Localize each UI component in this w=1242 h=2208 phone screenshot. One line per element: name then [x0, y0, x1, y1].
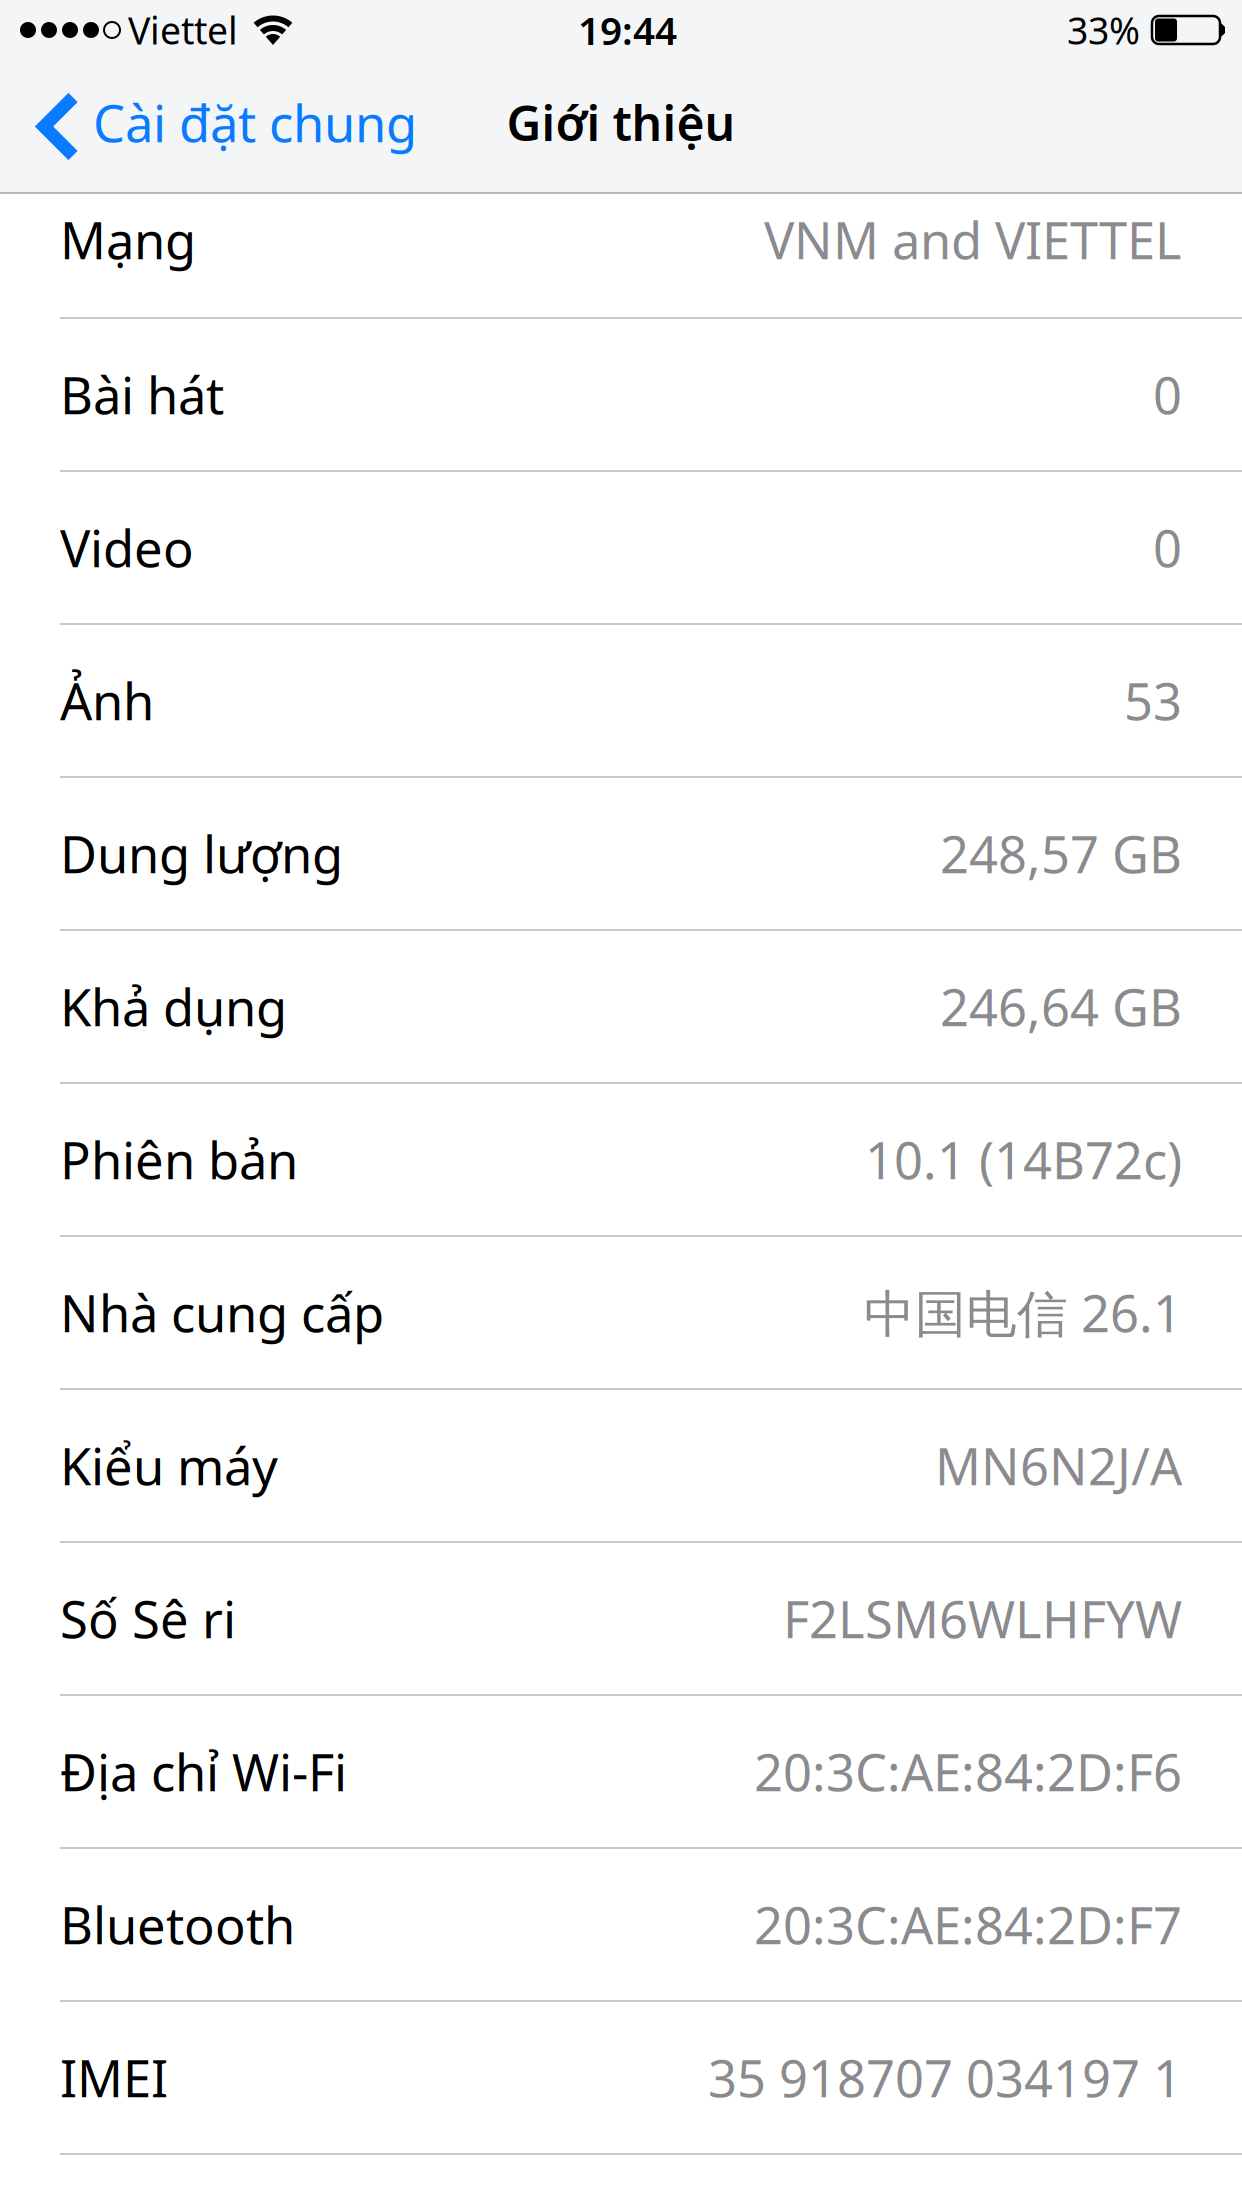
staticText: 35 918707 034197 1	[708, 2044, 1182, 2111]
staticText: 10.1 (14B72c)	[865, 1126, 1182, 1193]
staticText: 0	[1153, 361, 1182, 428]
staticText: Nhà cung cấp	[60, 1279, 384, 1346]
staticText: Địa chỉ Wi-Fi	[60, 1738, 347, 1805]
staticText: 20:3C:AE:84:2D:F6	[754, 1738, 1182, 1805]
staticText: Giới thiệu	[506, 91, 735, 154]
staticText: Số Sê ri	[60, 1585, 236, 1652]
staticText: 19:44	[578, 4, 677, 56]
staticText: Dung lượng	[60, 820, 343, 887]
staticText: Mạng	[60, 206, 196, 273]
staticText: Phiên bản	[60, 1126, 298, 1193]
button[interactable]: Quay lại Cài đặt chung	[0, 60, 441, 192]
staticText: 中国电信 26.1	[864, 1279, 1182, 1346]
staticText: Kiểu máy	[60, 1432, 278, 1499]
staticText: VNM and VIETTEL	[764, 206, 1182, 273]
staticText: Viettel	[128, 5, 238, 55]
staticText: Ảnh	[60, 667, 154, 734]
staticText: 20:3C:AE:84:2D:F7	[754, 1891, 1182, 1958]
staticText: 248,57 GB	[940, 820, 1182, 887]
staticText: F2LSM6WLHFYW	[783, 1585, 1182, 1652]
staticText: 246,64 GB	[940, 973, 1182, 1040]
staticText: 53	[1124, 667, 1182, 734]
staticText: Bluetooth	[60, 1891, 295, 1958]
staticText: Cài đặt chung	[93, 89, 417, 156]
staticText: 33%	[1067, 5, 1140, 55]
staticText: IMEI	[60, 2044, 168, 2111]
staticText: MN6N2J/A	[935, 1432, 1182, 1499]
staticText: Video	[60, 514, 194, 581]
staticText: Khả dụng	[60, 973, 287, 1040]
staticText: Bài hát	[60, 361, 224, 428]
staticText: 0	[1153, 514, 1182, 581]
